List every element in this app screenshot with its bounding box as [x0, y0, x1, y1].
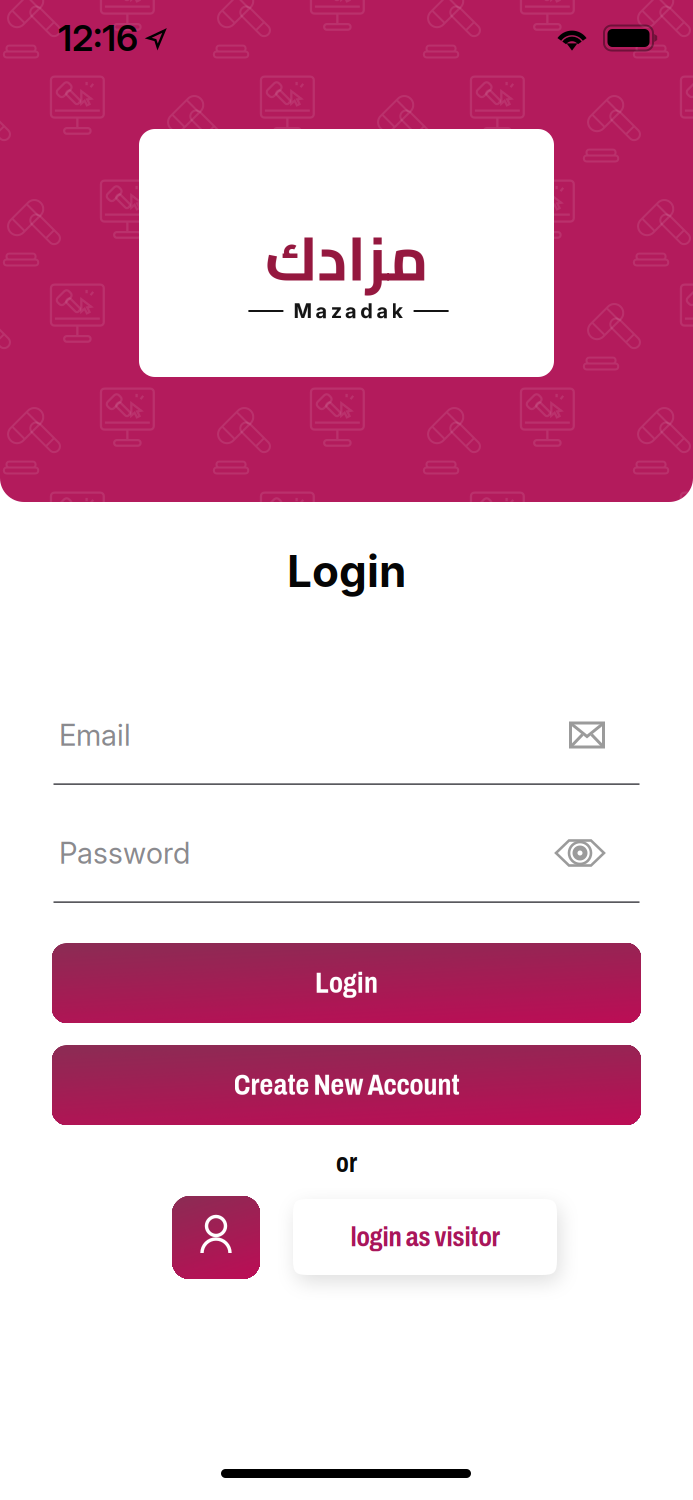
- staticText: Create New Account: [233, 1069, 459, 1101]
- button[interactable]: login as visitor: [293, 1199, 557, 1275]
- staticText: or: [336, 1148, 357, 1177]
- staticText: a: [376, 299, 388, 323]
- button[interactable]: Show password: [555, 839, 605, 867]
- button[interactable]: Login: [52, 943, 641, 1023]
- staticText: login as visitor: [350, 1222, 499, 1252]
- staticText: مزادك: [264, 200, 428, 315]
- staticText: 12:16: [58, 16, 138, 60]
- button[interactable]: Guest profile: [172, 1196, 260, 1279]
- staticText: Login: [287, 544, 406, 598]
- button[interactable]: Create New Account: [52, 1045, 641, 1125]
- staticText: k: [392, 299, 404, 323]
- staticText: a: [345, 299, 357, 323]
- staticText: d: [360, 299, 373, 323]
- staticText: z: [331, 299, 342, 323]
- button[interactable]: Email: [569, 721, 605, 748]
- staticText: Login: [315, 967, 378, 999]
- staticText: Password: [59, 835, 190, 871]
- staticText: Email: [59, 717, 131, 753]
- staticText: M: [293, 299, 312, 323]
- staticText: a: [316, 299, 328, 323]
